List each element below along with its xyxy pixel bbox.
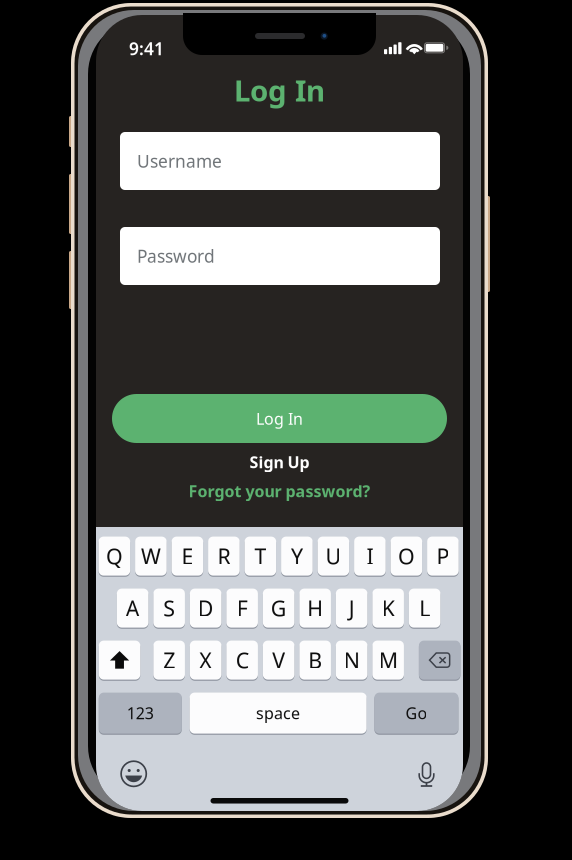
button[interactable]: Dictate — [418, 762, 435, 788]
staticText: Y — [291, 542, 303, 570]
button[interactable]: L — [409, 588, 440, 628]
button[interactable]: B — [299, 640, 331, 680]
button[interactable]: U — [318, 536, 349, 576]
button[interactable]: Q — [99, 536, 130, 576]
staticText: T — [254, 542, 266, 570]
staticText: J — [349, 594, 355, 622]
staticText: A — [126, 594, 140, 622]
staticText: space — [256, 702, 300, 724]
staticText: Forgot your password? — [188, 480, 370, 502]
button[interactable]: Sign Up — [96, 451, 463, 473]
staticText: Z — [163, 646, 175, 674]
staticText: R — [217, 542, 230, 570]
staticText: V — [272, 646, 285, 674]
staticText: X — [199, 646, 212, 674]
button[interactable]: Z — [153, 640, 185, 680]
button[interactable]: V — [263, 640, 294, 680]
button[interactable]: Y — [281, 536, 313, 576]
staticText: E — [181, 542, 193, 570]
staticText: 9:41 — [129, 37, 164, 60]
button[interactable]: P — [427, 536, 459, 576]
staticText: F — [237, 594, 248, 622]
button[interactable]: N — [336, 640, 367, 680]
staticText: Username — [137, 149, 222, 172]
button[interactable]: Shift — [99, 640, 140, 680]
button[interactable]: space — [190, 692, 367, 734]
button[interactable]: I — [354, 536, 386, 576]
button[interactable]: T — [245, 536, 276, 576]
button[interactable]: O — [391, 536, 422, 576]
button[interactable]: 123 — [99, 692, 182, 734]
staticText: W — [141, 542, 161, 570]
staticText: K — [382, 594, 395, 622]
staticText: Log In — [234, 70, 325, 109]
button[interactable]: E — [172, 536, 203, 576]
staticText: S — [163, 594, 175, 622]
staticText: Password — [137, 244, 215, 267]
button[interactable]: K — [372, 588, 404, 628]
button[interactable]: D — [190, 588, 221, 628]
staticText: O — [398, 542, 415, 570]
button[interactable]: Emoji — [120, 760, 147, 787]
button[interactable]: W — [135, 536, 167, 576]
staticText: B — [308, 646, 322, 674]
button[interactable]: F — [226, 588, 258, 628]
button[interactable]: G — [263, 588, 294, 628]
button[interactable]: Delete — [419, 640, 460, 680]
button[interactable]: M — [372, 640, 404, 680]
staticText: U — [325, 542, 341, 570]
staticText: P — [436, 542, 449, 570]
button[interactable]: J — [336, 588, 367, 628]
staticText: Log In — [256, 408, 303, 429]
button[interactable]: Password — [120, 227, 440, 285]
staticText: 123 — [127, 702, 154, 724]
staticText: H — [307, 594, 323, 622]
staticText: L — [419, 594, 430, 622]
staticText: Go — [405, 702, 427, 724]
button[interactable]: C — [226, 640, 258, 680]
staticText: D — [198, 594, 214, 622]
button[interactable]: Log In — [112, 394, 447, 443]
staticText: Sign Up — [249, 451, 309, 473]
button[interactable]: Username — [120, 132, 440, 190]
button[interactable]: Go — [374, 692, 458, 734]
button[interactable]: S — [153, 588, 185, 628]
button[interactable]: A — [117, 588, 148, 628]
button[interactable]: X — [190, 640, 221, 680]
staticText: Q — [106, 542, 123, 570]
staticText: I — [366, 542, 373, 570]
button[interactable]: H — [299, 588, 331, 628]
staticText: G — [271, 594, 287, 622]
button[interactable]: R — [208, 536, 240, 576]
button[interactable]: Forgot your password? — [96, 480, 463, 502]
staticText: N — [344, 646, 360, 674]
staticText: M — [379, 646, 398, 674]
staticText: C — [236, 646, 249, 674]
